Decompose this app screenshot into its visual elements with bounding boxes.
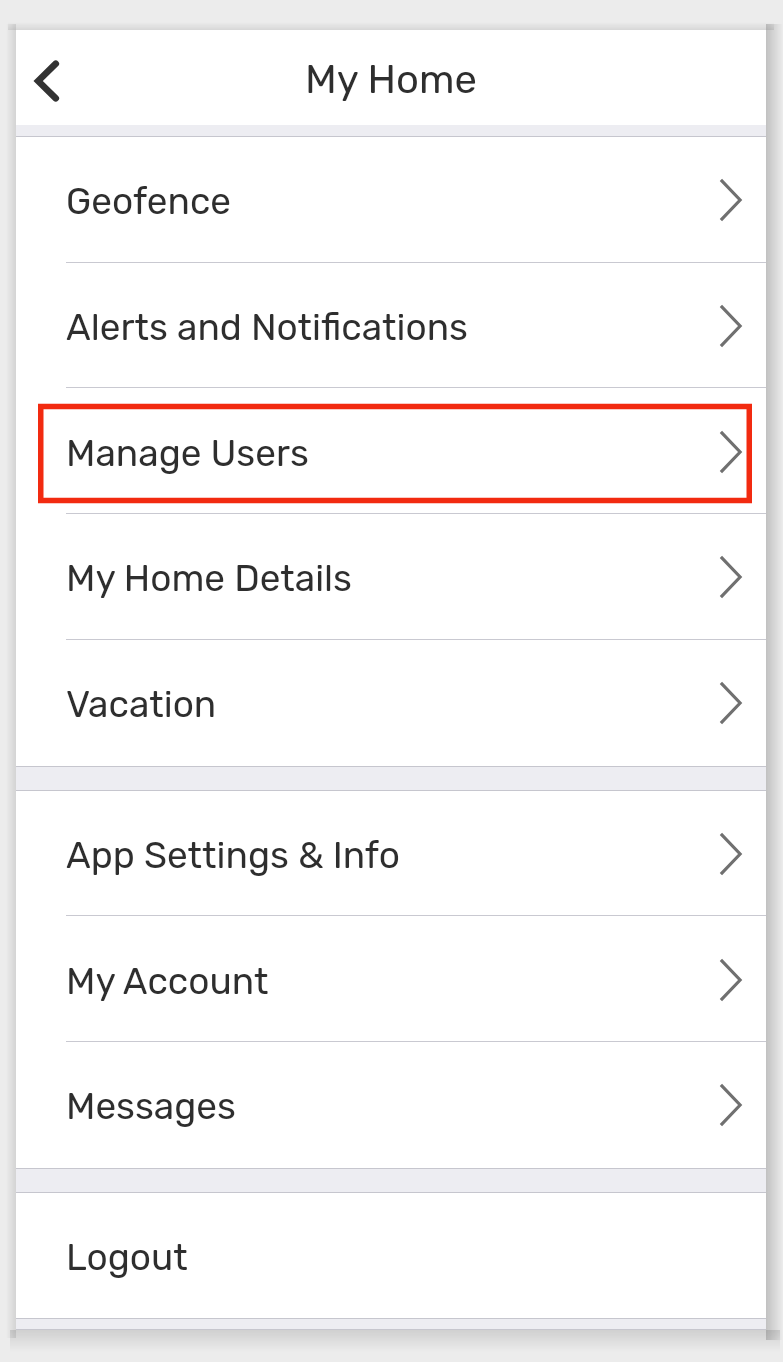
staticText: Manage Users bbox=[66, 431, 309, 475]
staticText: Logout bbox=[66, 1235, 188, 1279]
staticText: My Home bbox=[305, 56, 477, 103]
button[interactable]: Manage Users bbox=[16, 389, 766, 515]
button[interactable]: App Settings & Info bbox=[16, 791, 766, 917]
staticText: Geofence bbox=[66, 179, 232, 223]
button[interactable]: My Account bbox=[16, 917, 766, 1043]
staticText: Vacation bbox=[66, 682, 217, 726]
button[interactable]: Back bbox=[19, 53, 75, 109]
staticText: My Account bbox=[66, 959, 269, 1003]
staticText: Messages bbox=[66, 1084, 236, 1128]
button[interactable] bbox=[38, 404, 752, 503]
button[interactable]: Geofence bbox=[16, 137, 766, 263]
button[interactable]: Messages bbox=[16, 1042, 766, 1168]
button[interactable]: My Home Details bbox=[16, 514, 766, 640]
button[interactable]: Vacation bbox=[16, 640, 766, 766]
staticText: My Home Details bbox=[66, 556, 352, 600]
button[interactable]: Alerts and Notifications bbox=[16, 263, 766, 389]
button[interactable]: Logout bbox=[16, 1193, 766, 1318]
staticText: Alerts and Notifications bbox=[66, 305, 468, 349]
staticText: App Settings & Info bbox=[66, 833, 400, 877]
